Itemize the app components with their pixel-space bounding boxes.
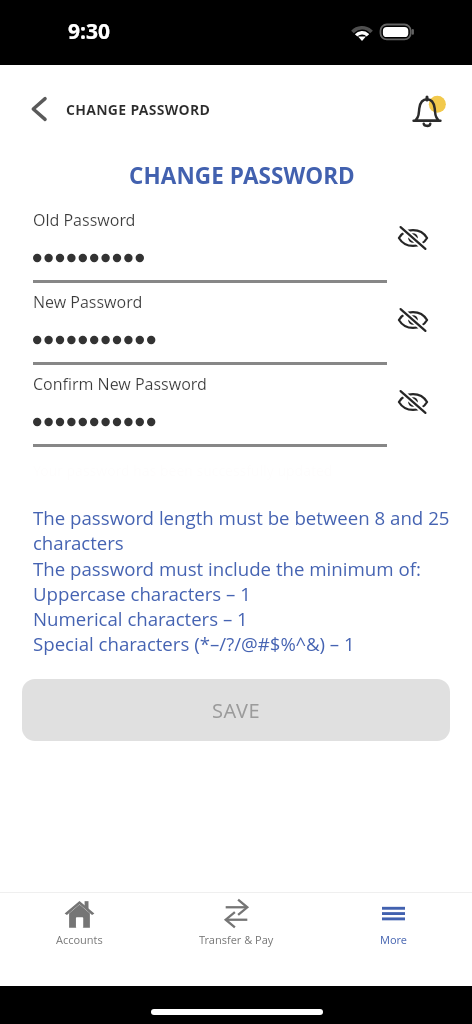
staticText: CHANGE PASSWORD — [66, 100, 211, 119]
button[interactable]: More — [315, 893, 472, 959]
staticText: Numerical characters – 1 — [33, 606, 248, 631]
button[interactable]: SAVE — [22, 679, 450, 741]
staticText: CHANGE PASSWORD — [129, 160, 355, 191]
button[interactable]: Notifications — [405, 87, 449, 131]
staticText: Transfer & Pay — [199, 932, 274, 947]
staticText: The password length must be between 8 an… — [33, 505, 458, 556]
button[interactable]: Transfer & Pay — [158, 893, 315, 959]
staticText: Special characters (*–/?/@#$%^&) – 1 — [33, 631, 355, 656]
staticText: SAVE — [212, 697, 261, 724]
staticText: Accounts — [56, 932, 103, 947]
staticText: Old Password — [33, 209, 136, 231]
staticText: Confirm New Password — [33, 373, 207, 395]
button[interactable]: Toggle password visibility — [393, 300, 433, 340]
button[interactable]: Accounts — [0, 893, 158, 959]
staticText: The password must include the minimum of… — [33, 556, 421, 581]
button[interactable]: CHANGE PASSWORD — [18, 90, 221, 128]
staticText: New Password — [33, 291, 143, 313]
staticText: Uppercase characters – 1 — [33, 581, 251, 606]
staticText: More — [380, 932, 408, 947]
button[interactable]: Toggle password visibility — [393, 218, 433, 258]
staticText: 9:30 — [68, 17, 110, 46]
button[interactable]: Toggle password visibility — [393, 382, 433, 422]
